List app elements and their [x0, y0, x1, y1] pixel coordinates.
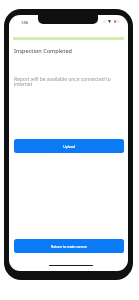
staticText: Return to main screen [51, 244, 87, 249]
button[interactable]: Return to main screen [14, 239, 124, 253]
staticText: Inspection Completed [14, 47, 72, 54]
staticText: 1:56 [21, 20, 29, 25]
staticText: Upload [63, 144, 75, 149]
staticText: Report will be available once connected … [14, 76, 116, 88]
button[interactable]: Upload [14, 139, 124, 153]
